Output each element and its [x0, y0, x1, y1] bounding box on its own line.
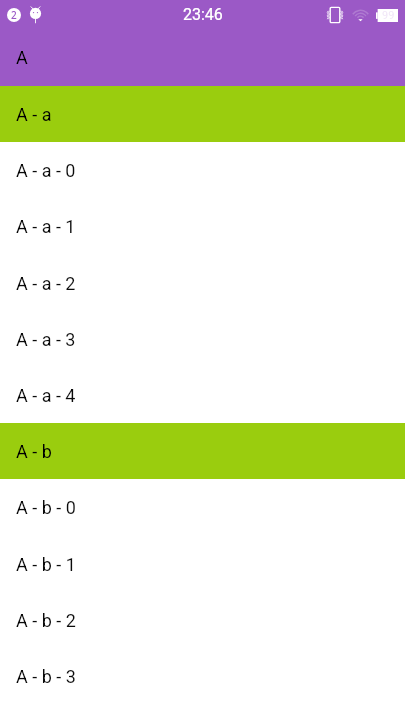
- button[interactable]: A: [0, 29, 405, 86]
- button[interactable]: A - b - 1: [0, 536, 405, 592]
- staticText: A - a: [16, 104, 52, 125]
- button[interactable]: A - b - 0: [0, 479, 405, 536]
- button[interactable]: A - a - 3: [0, 311, 405, 367]
- button[interactable]: A - a - 4: [0, 367, 405, 423]
- button[interactable]: A - b - 2: [0, 592, 405, 648]
- staticText: A: [16, 47, 28, 68]
- button[interactable]: A - b - 3: [0, 648, 405, 704]
- other: Battery 99 percent: [376, 9, 398, 22]
- button[interactable]: A - a - 0: [0, 142, 405, 198]
- other: Ringer set to vibrate: [325, 5, 345, 25]
- staticText: A - a - 1: [16, 216, 76, 237]
- button[interactable]: A - a - 2: [0, 255, 405, 311]
- staticText: 2: [11, 8, 17, 22]
- staticText: A - a - 4: [16, 385, 76, 406]
- button[interactable]: A - a - 1: [0, 198, 405, 255]
- other: Wi-Fi: [351, 5, 370, 25]
- button[interactable]: A - b: [0, 423, 405, 479]
- staticText: A - b - 2: [16, 610, 76, 631]
- staticText: A - a - 2: [16, 273, 76, 294]
- staticText: A - b - 1: [16, 554, 76, 575]
- staticText: A - a - 3: [16, 329, 76, 350]
- staticText: A - a - 0: [16, 160, 76, 181]
- staticText: A - b: [16, 441, 52, 462]
- staticText: 23:46: [183, 5, 223, 24]
- staticText: 99: [382, 9, 395, 22]
- button[interactable]: A - a: [0, 86, 405, 142]
- staticText: A - b - 0: [16, 497, 76, 518]
- staticText: A - b - 3: [16, 666, 76, 687]
